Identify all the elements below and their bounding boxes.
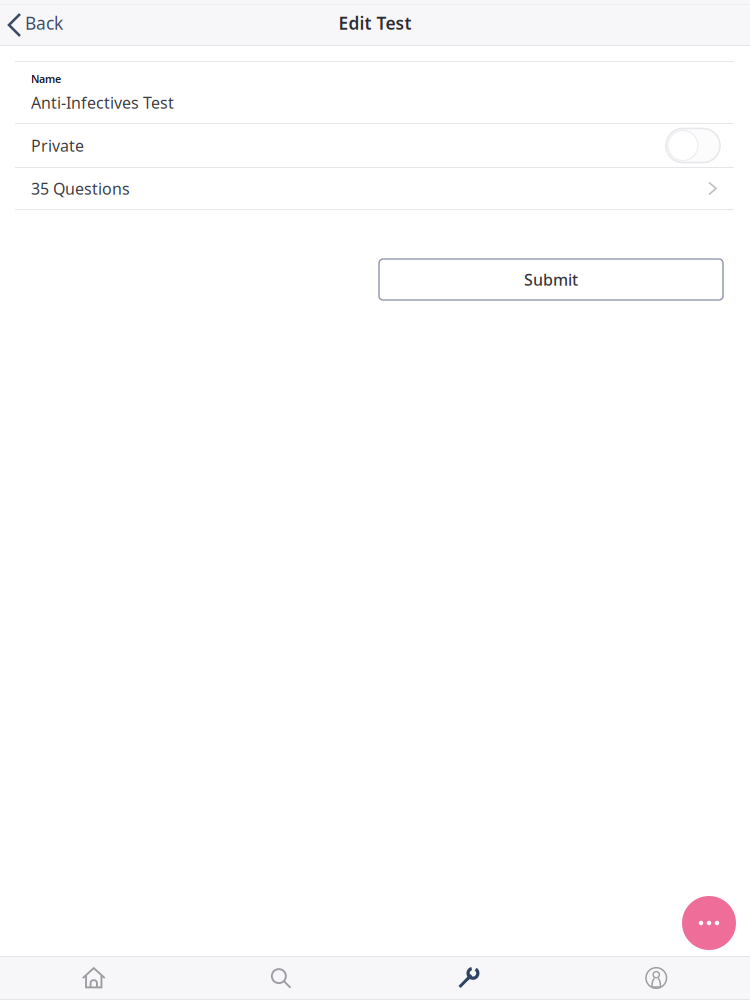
button[interactable]: Tools — [375, 957, 562, 999]
button[interactable]: Back — [0, 3, 73, 43]
staticText: Back — [25, 11, 63, 34]
staticText: 35 Questions — [31, 178, 130, 199]
staticText: Edit Test — [338, 11, 411, 34]
button[interactable]: Search — [187, 957, 375, 999]
button[interactable]: Submit — [379, 259, 723, 300]
staticText: Submit — [524, 269, 578, 290]
button[interactable]: More options — [682, 896, 736, 950]
button[interactable]: 35 Questions — [0, 168, 750, 209]
button[interactable]: Profile — [562, 957, 750, 999]
staticText: Anti-Infectives Test — [31, 92, 174, 113]
button[interactable]: Private — [0, 124, 750, 167]
staticText: Private — [31, 135, 84, 156]
button[interactable]: Home — [0, 957, 187, 999]
button[interactable]: Name — [0, 62, 750, 123]
staticText: Name — [31, 72, 61, 86]
